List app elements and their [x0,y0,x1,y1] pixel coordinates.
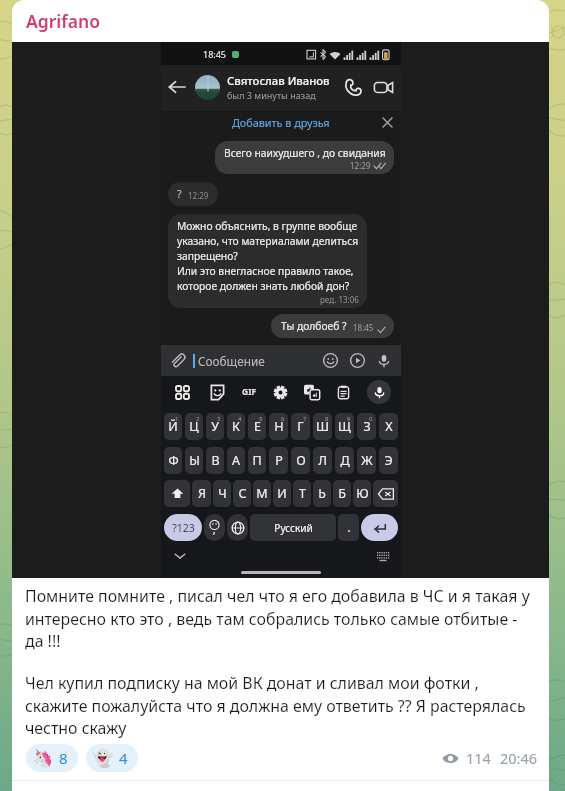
button[interactable]: Русский [250,514,336,541]
button[interactable]: Translate [304,384,320,400]
button[interactable]: Hide keyboard [174,552,186,560]
staticText: 1 [175,415,179,423]
button[interactable]: Ч [213,480,231,507]
button[interactable]: Switch keyboard [376,551,390,561]
button[interactable]: О [291,447,310,474]
button[interactable]: Можно объяснить, в группе вообще указано… [168,214,367,308]
button[interactable]: И [273,480,291,507]
button[interactable]: Д [335,447,354,474]
staticText: был 3 минуты назад [227,89,316,101]
staticText: Ь [318,485,326,502]
staticText: Й [168,418,178,435]
staticText: 4 [119,748,128,768]
button[interactable]: Е [248,413,266,440]
button[interactable]: Всего наихудшего , до свидания [215,141,394,174]
button[interactable]: Video call [374,78,393,97]
button[interactable]: З [357,413,376,440]
button[interactable]: Call [345,78,363,96]
button[interactable]: Ь [313,480,331,507]
button[interactable]: ?123 [164,514,202,541]
button[interactable]: Microphone [377,354,391,368]
button[interactable]: Voice input [367,380,391,404]
staticText: ред. 13:06 [320,294,359,305]
button[interactable]: ? [168,182,218,206]
button[interactable]: Key [164,480,190,507]
button[interactable]: М [253,480,271,507]
staticText: 3 [217,415,221,423]
button[interactable]: Settings [273,385,288,400]
staticText: 🦄 [32,748,54,768]
staticText: Помните помните , писал чел что я его до… [25,585,540,651]
button[interactable]: Добавить в друзья [232,115,330,130]
button[interactable]: Clipboard [336,385,351,400]
button[interactable]: Back [168,78,186,96]
button[interactable]: Ты долбоеб ? [271,314,394,338]
staticText: ?123 [172,521,195,535]
button[interactable]: С [233,480,251,507]
staticText: П [252,452,262,469]
button[interactable]: А [227,447,245,474]
staticText: Р [275,452,283,469]
staticText: Я [198,485,206,502]
button[interactable]: Ц [185,413,203,440]
button[interactable]: Apps [171,381,193,403]
staticText: В [211,452,220,469]
button[interactable]: Ю [353,480,371,507]
button[interactable]: К [227,413,245,440]
button[interactable]: 👻 [86,744,138,772]
staticText: Русский [274,521,313,535]
button[interactable]: Г [291,413,310,440]
staticText: Святослав Иванов [227,73,330,88]
button[interactable]: Microphone [373,386,386,399]
staticText: 7 [303,415,307,423]
staticText: Т [299,485,306,502]
staticText: 9 [347,415,351,423]
staticText: Л [318,452,327,469]
staticText: ? [177,187,182,201]
button[interactable]: Б [333,480,351,507]
button[interactable]: Х [379,413,398,440]
button[interactable]: У [206,413,224,440]
staticText: Г [297,418,304,435]
button[interactable]: Р [269,447,288,474]
button[interactable]: Key [204,514,225,541]
staticText: С [238,485,247,502]
staticText: Ц [189,418,199,435]
button[interactable]: Play [350,353,365,368]
staticText: 18:45 [203,48,227,60]
button[interactable]: Ж [357,447,376,474]
button[interactable]: GIF [242,386,257,398]
button[interactable]: Key [227,514,248,541]
button[interactable]: Emoji [323,353,338,368]
button[interactable]: 🦄 [26,744,78,772]
button[interactable]: Н [269,413,288,440]
staticText: 2 [196,415,200,423]
staticText: Agrifano [26,9,100,33]
button[interactable]: Я [192,480,211,507]
button[interactable]: Attach [169,352,186,369]
staticText: Х [385,418,393,435]
button[interactable]: П [248,447,266,474]
staticText: 5 [259,415,263,423]
button[interactable]: Key [361,514,398,541]
staticText: И [277,485,287,502]
button[interactable]: Stickers [209,384,226,401]
button[interactable]: Close [383,118,392,127]
staticText: 114 [466,748,491,768]
staticText: Ф [168,452,179,469]
button[interactable]: Т [293,480,311,507]
button[interactable]: Э [379,447,398,474]
button[interactable]: . [338,514,359,541]
staticText: Сообщение [198,353,265,369]
button[interactable]: Key [373,480,398,507]
button[interactable]: Л [313,447,332,474]
button[interactable]: Ш [313,413,332,440]
staticText: О [296,452,306,469]
button[interactable]: Ы [185,447,203,474]
button[interactable]: Щ [335,413,354,440]
button[interactable]: Ф [164,447,182,474]
button[interactable]: Й [164,413,182,440]
button[interactable]: Agrifano [12,0,549,780]
staticText: 18:45 [353,322,374,333]
button[interactable]: В [206,447,224,474]
